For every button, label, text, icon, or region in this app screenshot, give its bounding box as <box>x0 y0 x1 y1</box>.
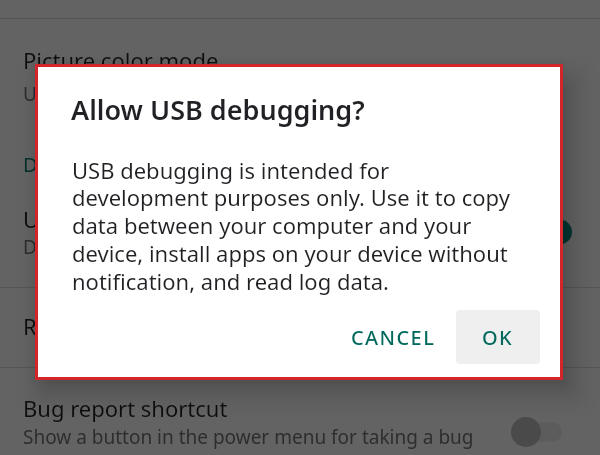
staticText: Bug report shortcut <box>23 393 228 423</box>
staticText: USB debugging <box>23 204 185 234</box>
staticText: Debug mode when USB is connected <box>23 234 353 260</box>
staticText: Use sRGB <box>23 81 109 107</box>
staticText: Show a button in the power menu for taki… <box>23 424 474 450</box>
button[interactable] <box>0 19 600 119</box>
button[interactable] <box>0 368 600 455</box>
staticText: Allow USB debugging? <box>71 91 365 128</box>
button[interactable]: OK <box>456 310 540 364</box>
staticText: Debugging <box>23 151 128 178</box>
button[interactable]: USB debugging toggle <box>510 212 572 252</box>
staticText: Picture color mode <box>23 45 219 75</box>
button[interactable] <box>0 190 600 286</box>
button[interactable]: CANCEL <box>338 310 448 364</box>
staticText: USB debugging is intended for developmen… <box>72 155 519 296</box>
staticText: CANCEL <box>351 324 436 351</box>
button[interactable] <box>0 288 600 367</box>
staticText: Revoke USB debugging authorizations <box>23 311 420 341</box>
staticText: OK <box>482 324 514 351</box>
button[interactable]: Bug report shortcut toggle <box>510 412 572 452</box>
